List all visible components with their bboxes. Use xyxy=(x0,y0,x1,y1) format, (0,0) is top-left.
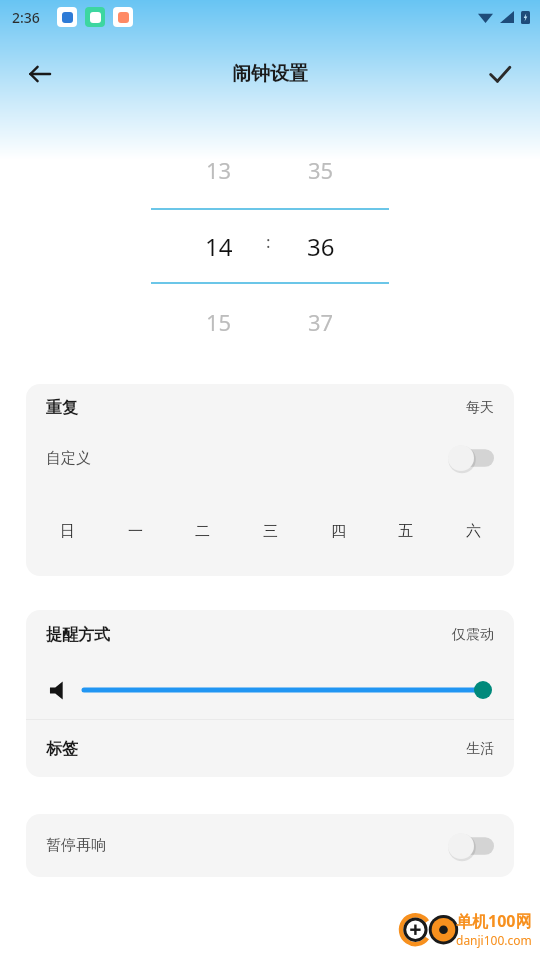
staticText: 2:36 xyxy=(12,8,40,27)
staticText: 三 xyxy=(263,522,278,541)
button[interactable]: 暂停再响 xyxy=(26,814,514,877)
button[interactable]: 重复 xyxy=(26,384,514,432)
staticText: 一 xyxy=(128,522,143,541)
staticText: 每天 xyxy=(466,399,494,417)
button[interactable]: Back xyxy=(16,50,64,98)
button[interactable]: 提醒方式 xyxy=(26,610,514,660)
staticText: 37 xyxy=(308,307,334,337)
button[interactable]: 自定义 xyxy=(26,432,514,484)
staticText: 日 xyxy=(60,522,75,541)
button[interactable]: Confirm xyxy=(476,50,524,98)
staticText: 五 xyxy=(398,522,413,541)
staticText: 13 xyxy=(206,155,232,185)
staticText: 15 xyxy=(206,307,232,337)
staticText: 暂停再响 xyxy=(46,836,106,855)
button[interactable] xyxy=(84,678,492,702)
button[interactable]: 14 xyxy=(138,210,300,282)
other: Volume xyxy=(46,678,70,702)
button[interactable]: Toggle xyxy=(448,833,494,859)
button[interactable]: 36 xyxy=(240,210,402,282)
staticText: 36 xyxy=(307,230,335,263)
staticText: 闹钟设置 xyxy=(232,62,308,86)
staticText: 六 xyxy=(466,522,481,541)
staticText: 35 xyxy=(308,155,334,185)
staticText: 仅震动 xyxy=(452,626,494,644)
button[interactable]: 一 xyxy=(118,514,152,548)
button[interactable]: 五 xyxy=(388,514,422,548)
button[interactable]: 日 xyxy=(50,514,84,548)
staticText: 四 xyxy=(331,522,346,541)
button[interactable]: 三 xyxy=(253,514,287,548)
staticText: 自定义 xyxy=(46,449,91,468)
staticText: danji100.com xyxy=(456,932,532,948)
button[interactable]: Toggle xyxy=(448,445,494,471)
staticText: 标签 xyxy=(46,739,78,759)
staticText: : xyxy=(266,230,271,253)
staticText: 生活 xyxy=(466,740,494,758)
button[interactable]: 二 xyxy=(185,514,219,548)
button[interactable]: 六 xyxy=(456,514,490,548)
staticText: 二 xyxy=(195,522,210,541)
staticText: 单机100网 xyxy=(456,910,532,932)
button[interactable]: 四 xyxy=(321,514,355,548)
staticText: 重复 xyxy=(46,398,78,418)
button[interactable]: 标签 xyxy=(26,720,514,777)
staticText: 14 xyxy=(205,230,233,263)
staticText: 提醒方式 xyxy=(46,625,110,645)
